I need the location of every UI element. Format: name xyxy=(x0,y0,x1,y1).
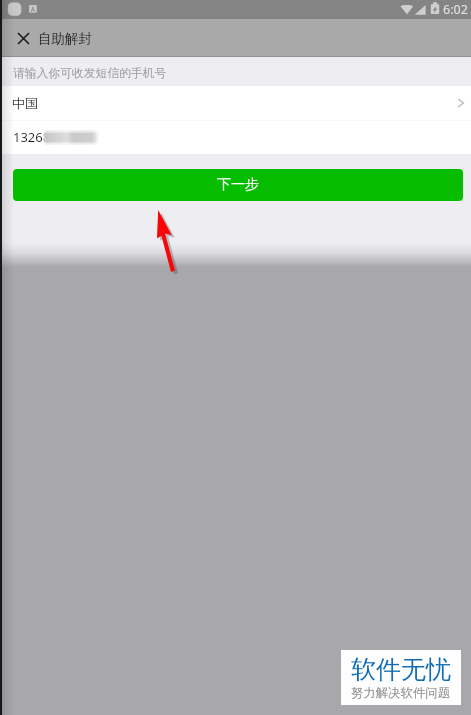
staticText: 13268 xyxy=(13,128,51,146)
staticText: 请输入你可收发短信的手机号 xyxy=(13,66,167,81)
staticText: 软件无忧 xyxy=(351,654,451,685)
button[interactable]: 下一步 xyxy=(13,169,463,201)
button[interactable]: Close xyxy=(9,24,37,52)
staticText: 中国 xyxy=(12,95,38,111)
button[interactable]: 中国 xyxy=(0,86,471,120)
button[interactable]: 13268 xyxy=(0,121,471,154)
staticText: 6:02 xyxy=(443,1,468,18)
staticText: 努力解决软件问题 xyxy=(351,685,451,701)
staticText: 自助解封 xyxy=(38,30,92,47)
staticText: 下一步 xyxy=(217,176,259,194)
